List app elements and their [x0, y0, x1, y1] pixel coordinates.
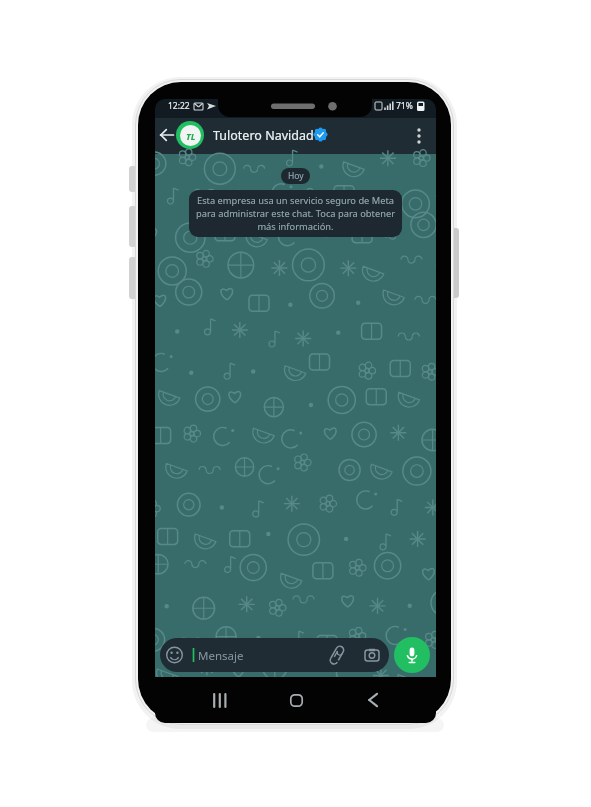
staticText: 71%	[396, 100, 413, 112]
button[interactable]	[202, 685, 236, 715]
button[interactable]	[356, 685, 390, 715]
staticText: Hoy	[288, 170, 304, 182]
staticText: Mensaje	[198, 648, 244, 664]
staticText: TL	[186, 130, 196, 142]
button[interactable]: Mensaje	[160, 638, 389, 672]
button[interactable]	[409, 124, 429, 148]
staticText: Esta empresa usa un servicio seguro de M…	[196, 194, 395, 233]
staticText: Tulotero Navidad	[213, 127, 314, 144]
button[interactable]: TL	[176, 121, 204, 149]
button[interactable]	[155, 124, 179, 146]
button[interactable]	[279, 685, 313, 715]
staticText: 12:22	[168, 100, 190, 112]
button[interactable]: Esta empresa usa un servicio seguro de M…	[189, 190, 402, 237]
button[interactable]	[394, 637, 430, 673]
